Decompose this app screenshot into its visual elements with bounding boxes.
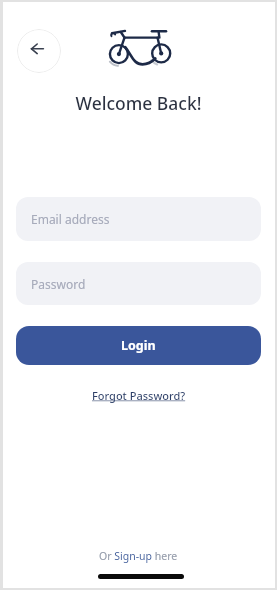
button[interactable] — [17, 29, 61, 73]
staticText: Password — [31, 276, 86, 292]
staticText: Email address — [31, 211, 110, 227]
button[interactable]: Email address — [16, 197, 261, 241]
button[interactable]: Or Sign-up here — [99, 549, 178, 563]
button[interactable]: Login — [16, 326, 261, 365]
button[interactable]: Password — [16, 262, 261, 305]
button[interactable]: Forgot Password? — [92, 388, 186, 403]
staticText: Welcome Back! — [0, 91, 277, 115]
staticText: Login — [121, 337, 156, 354]
